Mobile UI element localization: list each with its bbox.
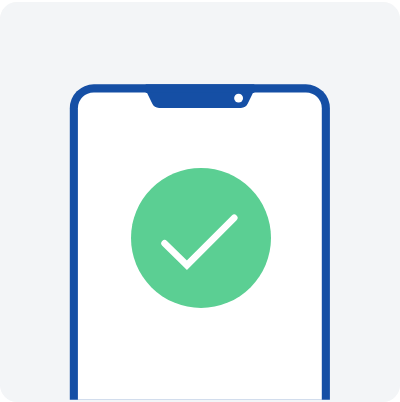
- button[interactable]: Payment successful illustration: [0, 2, 400, 402]
